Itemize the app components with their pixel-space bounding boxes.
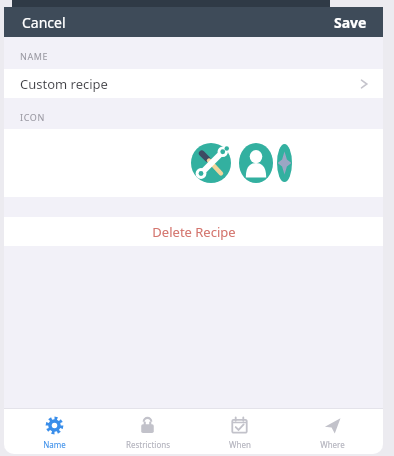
button[interactable]: Where (290, 409, 375, 454)
staticText: Where (320, 439, 345, 450)
button[interactable]: Name (12, 409, 97, 454)
staticText: Cancel (22, 13, 66, 32)
button[interactable]: Custom recipe (4, 69, 383, 98)
button[interactable]: Person icon (239, 143, 273, 183)
staticText: ICON (20, 111, 45, 123)
staticText: Custom recipe (20, 75, 108, 93)
staticText: Name (43, 439, 66, 450)
staticText: Restrictions (126, 439, 170, 450)
staticText: NAME (20, 50, 49, 62)
button[interactable]: Restrictions (105, 409, 190, 454)
button[interactable]: Cancel (4, 9, 84, 36)
staticText: Delete Recipe (152, 223, 236, 241)
staticText: Save (334, 13, 367, 32)
button[interactable]: When (197, 409, 282, 454)
button[interactable]: Star icon (277, 144, 292, 182)
staticText: When (229, 439, 251, 450)
button[interactable]: Delete Recipe (4, 217, 383, 246)
button[interactable]: Tools icon (191, 143, 231, 183)
button[interactable]: Save (318, 9, 383, 36)
